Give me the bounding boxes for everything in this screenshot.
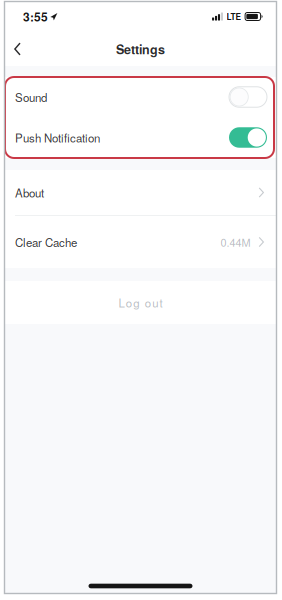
staticText: Log out (118, 294, 163, 311)
button[interactable]: About (4, 170, 277, 215)
staticText: Push Notification (15, 129, 100, 146)
button[interactable]: Back (5, 34, 30, 64)
staticText: 3:55 (23, 8, 48, 25)
staticText: Sound (15, 89, 47, 105)
staticText: 0.44M (221, 234, 251, 250)
staticText: Clear Cache (15, 234, 77, 250)
staticText: Settings (116, 40, 165, 58)
button[interactable]: Push Notification (4, 117, 277, 158)
staticText: LTE (227, 11, 242, 22)
button[interactable]: Sound (4, 77, 277, 117)
button[interactable]: Log out (4, 281, 277, 324)
button[interactable]: Clear Cache (4, 216, 277, 268)
staticText: About (15, 184, 44, 201)
